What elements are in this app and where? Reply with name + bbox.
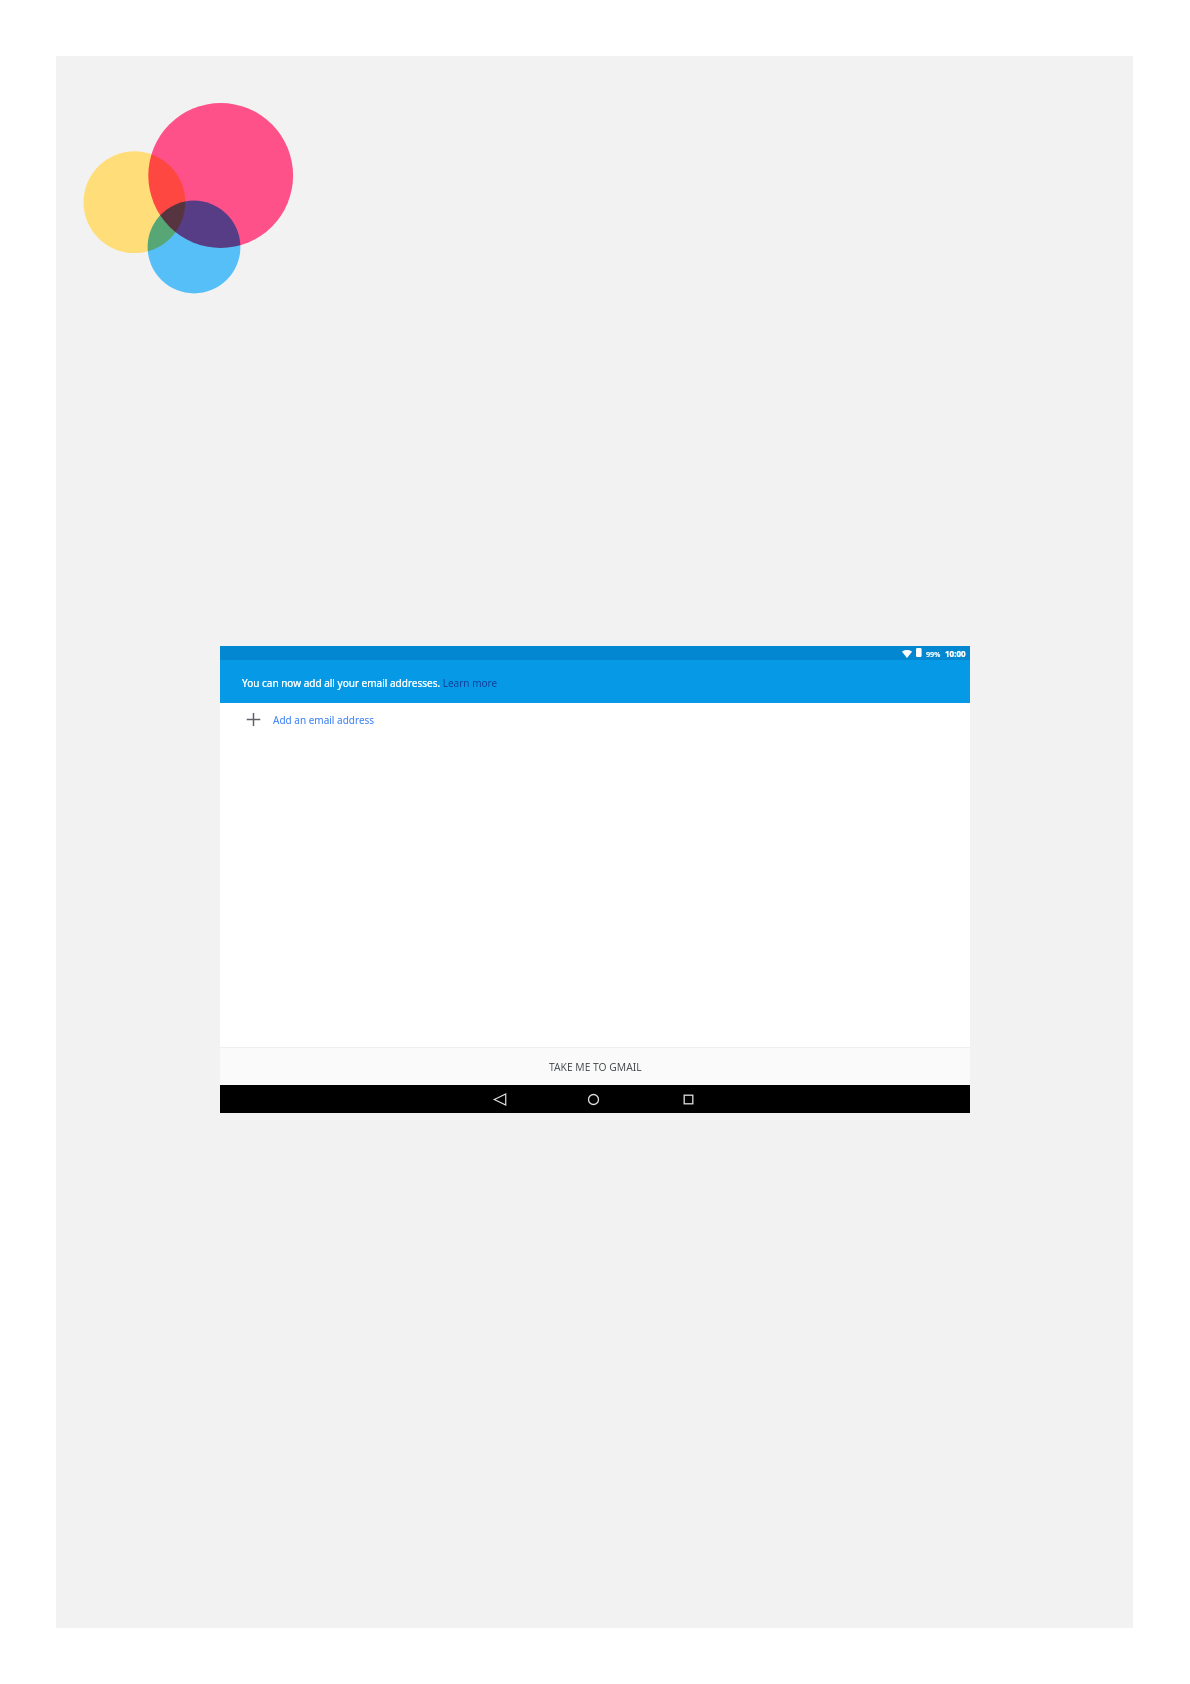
button[interactable]: TAKE ME TO GMAIL [220,1048,970,1085]
staticText: You can now add all your email addresses… [242,676,498,690]
button[interactable]: You can now add all your email addresses… [220,660,970,703]
staticText: 99% [926,649,941,659]
button[interactable]: Add an email address [220,697,970,742]
button[interactable]: Home [579,1085,607,1113]
staticText: 10:00 [945,648,966,659]
staticText: TAKE ME TO GMAIL [549,1060,642,1074]
staticText: Add an email address [273,713,375,727]
button[interactable]: Recent apps [674,1085,702,1113]
button[interactable]: Back [485,1085,513,1113]
